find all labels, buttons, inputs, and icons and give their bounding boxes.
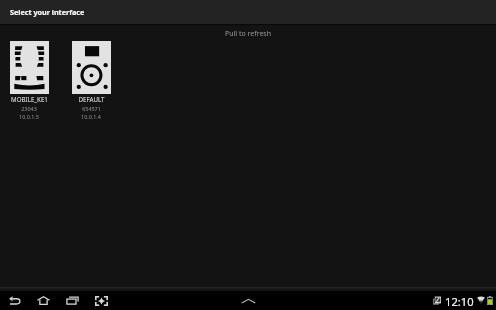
staticText: 12:10: [445, 294, 474, 309]
button[interactable]: System status: [430, 291, 496, 310]
staticText: 10.0.1.5: [19, 113, 39, 120]
button[interactable]: MOBILE_KE1: [0, 41, 59, 120]
staticText: DEFAULT: [78, 95, 105, 103]
staticText: 10.0.1.4: [81, 113, 101, 120]
staticText: 23043: [21, 105, 37, 112]
staticText: 654571: [82, 105, 101, 112]
staticText: Pull to refresh: [0, 29, 496, 39]
button[interactable]: Back: [4, 291, 26, 310]
button[interactable]: Home: [32, 291, 55, 310]
button[interactable]: Notifications: [240, 295, 257, 307]
staticText: MOBILE_KE1: [11, 95, 48, 103]
button[interactable]: Recent apps: [61, 291, 84, 310]
button[interactable]: DEFAULT: [61, 41, 121, 120]
button[interactable]: Zoom to fill screen: [90, 291, 113, 310]
staticText: Select your interface: [10, 7, 85, 17]
